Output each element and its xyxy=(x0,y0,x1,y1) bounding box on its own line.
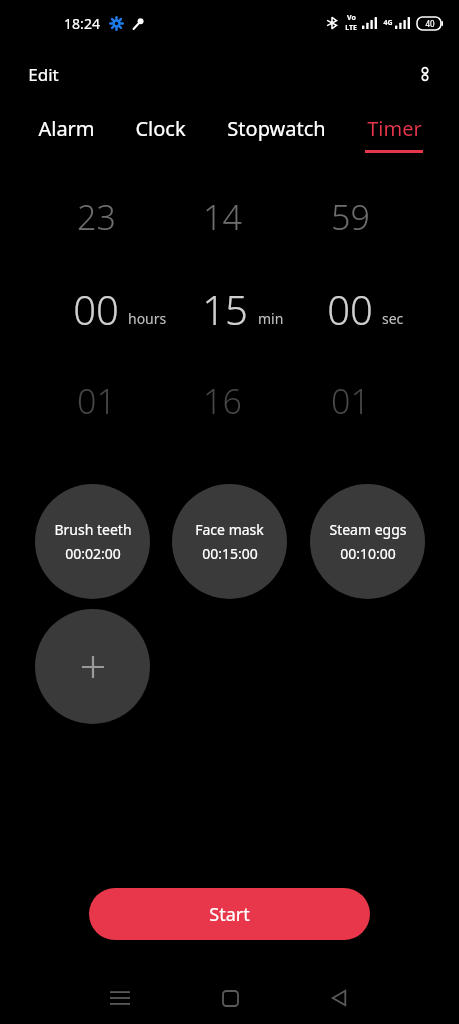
button[interactable]: Back xyxy=(317,976,361,1020)
staticText: Face mask xyxy=(195,520,264,539)
staticText: 00 xyxy=(327,282,373,336)
button[interactable]: Alarm xyxy=(30,102,102,164)
button[interactable]: Home xyxy=(208,976,252,1020)
button[interactable]: Face mask xyxy=(172,484,287,599)
staticText: 01 xyxy=(77,378,116,424)
button[interactable]: Timer xyxy=(363,102,425,164)
staticText: 15 xyxy=(202,282,248,336)
staticText: LTE xyxy=(345,23,357,33)
button[interactable]: Clock xyxy=(125,102,195,164)
staticText: 01 xyxy=(331,378,370,424)
staticText: 14 xyxy=(203,194,242,240)
staticText: 18:24 xyxy=(64,14,100,33)
staticText: 40 xyxy=(425,18,435,29)
staticText: 4G xyxy=(383,18,393,28)
staticText: hours xyxy=(128,309,167,328)
staticText: 00:15:00 xyxy=(202,544,258,563)
button[interactable]: Brush teeth xyxy=(35,484,150,599)
staticText: Edit xyxy=(28,63,59,86)
staticText: 00:02:00 xyxy=(65,544,121,563)
staticText: Timer xyxy=(367,115,422,142)
button[interactable]: Edit xyxy=(16,55,71,94)
button[interactable]: More options xyxy=(405,54,445,94)
staticText: min xyxy=(258,309,284,328)
staticText: Stopwatch xyxy=(227,115,326,142)
button[interactable]: Stopwatch xyxy=(217,102,335,164)
staticText: 23 xyxy=(77,194,116,240)
button[interactable]: Start xyxy=(89,888,370,940)
staticText: Brush teeth xyxy=(54,520,132,539)
staticText: 00 xyxy=(73,282,119,336)
staticText: Alarm xyxy=(38,115,95,142)
staticText: 16 xyxy=(203,378,242,424)
staticText: Clock xyxy=(135,115,186,142)
staticText: Vo xyxy=(347,13,356,23)
button[interactable]: Recent apps xyxy=(98,976,142,1020)
button[interactable]: Add timer preset xyxy=(35,609,150,724)
button[interactable]: Steam eggs xyxy=(310,484,425,599)
staticText: Start xyxy=(209,902,250,927)
staticText: Steam eggs xyxy=(329,520,407,539)
staticText: 00:10:00 xyxy=(340,544,396,563)
staticText: sec xyxy=(382,309,404,328)
staticText: 59 xyxy=(331,194,370,240)
